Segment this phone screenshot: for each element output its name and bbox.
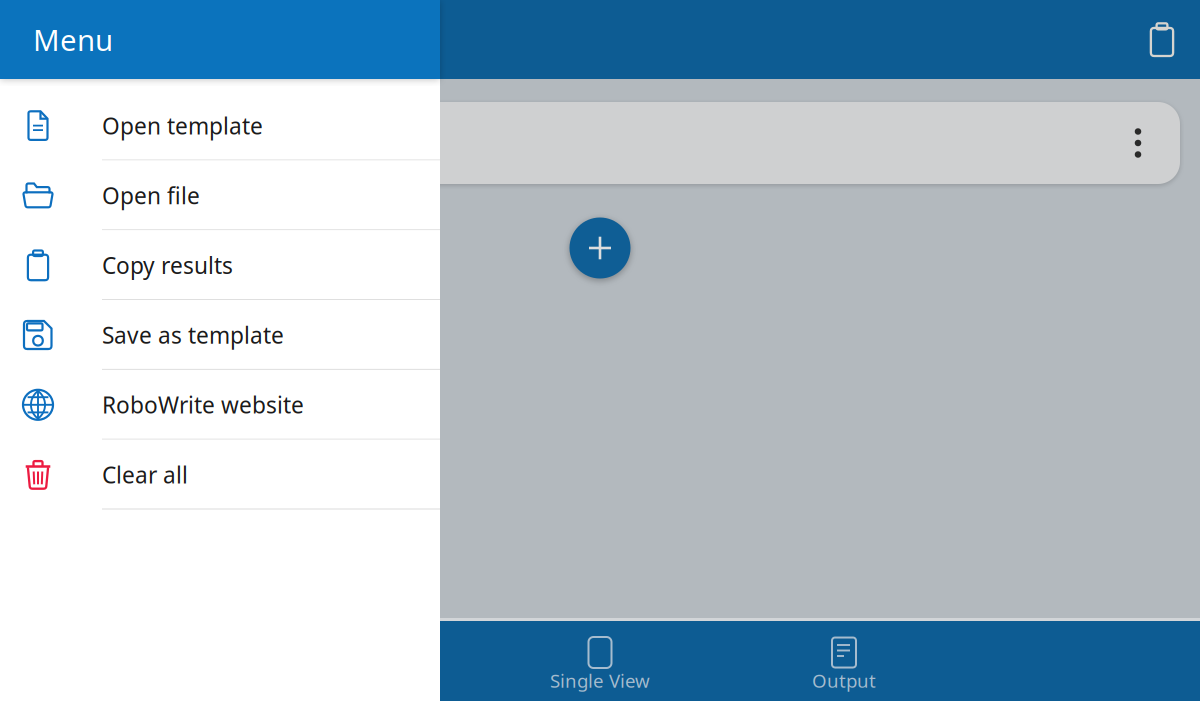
button[interactable]: Open file — [0, 160, 440, 230]
button[interactable]: Copy results — [0, 230, 440, 300]
staticText: Output — [812, 668, 876, 693]
button[interactable]: Output — [724, 621, 964, 701]
button[interactable]: Add — [566, 214, 634, 282]
button[interactable]: Save as template — [0, 300, 440, 370]
button[interactable]: More options — [1116, 107, 1160, 179]
button[interactable]: RoboWrite website — [0, 370, 440, 440]
staticText: Clear all — [102, 459, 188, 490]
staticText: RoboWrite website — [102, 390, 304, 420]
staticText: Open template — [102, 110, 263, 141]
staticText: Copy results — [102, 250, 233, 280]
button[interactable]: Copy results — [1135, 12, 1189, 66]
button[interactable]: Single View — [480, 621, 720, 701]
staticText: Menu — [33, 20, 113, 59]
staticText: Open file — [102, 180, 200, 210]
staticText: Single View — [550, 668, 650, 693]
button[interactable]: Open template — [0, 91, 440, 160]
button[interactable]: Clear all — [0, 440, 440, 509]
staticText: Save as template — [102, 320, 284, 350]
